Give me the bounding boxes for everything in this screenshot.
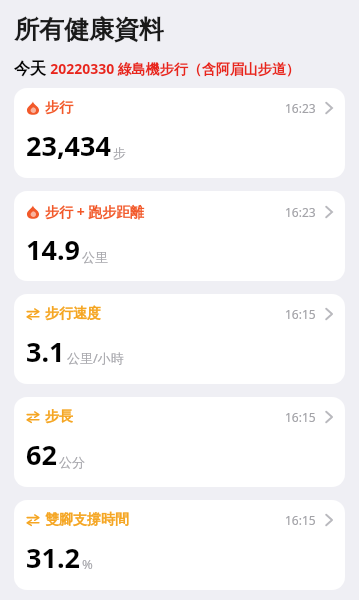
staticText: 31.2	[26, 539, 80, 576]
staticText: 所有健康資料	[14, 14, 164, 45]
staticText: 3.1	[26, 333, 65, 370]
staticText: 23,434	[26, 127, 111, 164]
staticText: 14.9	[26, 231, 80, 268]
staticText: %	[82, 555, 93, 573]
other: Walking metric	[26, 307, 40, 321]
staticText: 公里	[82, 249, 108, 265]
staticText: 62	[26, 436, 57, 473]
staticText: 16:15	[285, 512, 316, 528]
staticText: 公里/小時	[67, 349, 124, 367]
staticText: 雙腳支撐時間	[45, 511, 129, 529]
button[interactable]: Walking metric	[14, 397, 345, 487]
staticText: 16:15	[285, 409, 316, 425]
staticText: 16:23	[285, 204, 316, 220]
button[interactable]: Activity	[14, 191, 345, 281]
button[interactable]: Walking metric	[14, 294, 345, 384]
staticText: 今天 20220330 綠島機步行（含阿眉山步道）	[14, 57, 300, 79]
staticText: 步長	[45, 408, 73, 426]
staticText: 16:15	[285, 306, 316, 322]
staticText: 公分	[59, 454, 85, 470]
other: Activity	[26, 205, 40, 219]
button[interactable]: Walking metric	[14, 500, 345, 590]
other: Walking metric	[26, 513, 40, 527]
staticText: 步行	[45, 99, 73, 117]
other: Walking metric	[26, 410, 40, 424]
button[interactable]: Activity	[14, 88, 345, 178]
other: Activity	[26, 101, 40, 115]
staticText: 16:23	[285, 100, 316, 116]
staticText: 步行速度	[45, 305, 101, 323]
staticText: 步行 + 跑步距離	[45, 202, 145, 221]
staticText: 步	[113, 145, 126, 161]
